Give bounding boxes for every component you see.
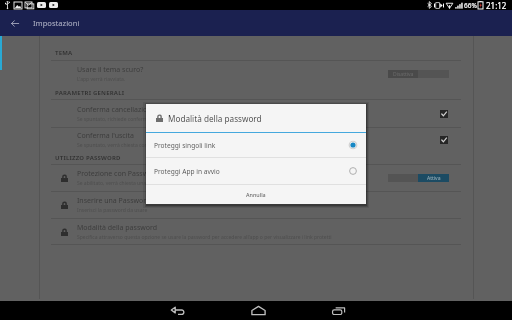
button[interactable]: Inserire una Password bbox=[40, 192, 461, 218]
staticText: Attiva bbox=[427, 175, 441, 182]
button[interactable]: Checkbox checked bbox=[440, 136, 448, 144]
staticText: Impostazioni bbox=[33, 18, 80, 28]
staticText: 66% bbox=[464, 1, 477, 10]
button[interactable]: Home bbox=[249, 301, 267, 320]
button[interactable]: Protezione con Password bbox=[40, 165, 461, 191]
staticText: Proteggi App in avvio bbox=[154, 167, 220, 176]
staticText: Usare il tema scuro? bbox=[77, 65, 144, 75]
staticText: Modalità della password bbox=[77, 223, 158, 233]
button[interactable]: Recent apps bbox=[330, 301, 348, 320]
button[interactable]: Checkbox checked bbox=[440, 110, 448, 118]
staticText: PARAMETRI GENERALI bbox=[55, 89, 125, 97]
staticText: 21:12 bbox=[486, 0, 507, 10]
staticText: Protezione con Password bbox=[77, 169, 160, 179]
staticText: Conferma cancellazione bbox=[77, 105, 156, 115]
button[interactable]: Conferma l'uscita bbox=[40, 128, 461, 151]
staticText: Inserisci la password da usare bbox=[77, 207, 148, 214]
button[interactable]: Modalità della password bbox=[40, 219, 461, 244]
button[interactable]: Disattiva bbox=[388, 70, 449, 78]
staticText: Conferma l'uscita bbox=[77, 131, 134, 141]
button[interactable]: Annulla bbox=[146, 185, 366, 204]
staticText: Annulla bbox=[246, 191, 266, 198]
staticText: Se abilitato, verrà chiesta una password… bbox=[77, 180, 190, 187]
button[interactable]: Attiva bbox=[388, 174, 449, 182]
staticText: Disattiva bbox=[393, 71, 414, 78]
button[interactable]: Proteggi App in avvio bbox=[146, 158, 366, 184]
staticText: UTILIZZO PASSWORD bbox=[55, 154, 121, 162]
button[interactable]: Back bbox=[5, 14, 24, 33]
staticText: Inserire una Password bbox=[77, 196, 151, 206]
button[interactable]: Usare il tema scuro? bbox=[40, 61, 461, 86]
staticText: Proteggi singoli link bbox=[154, 141, 216, 150]
staticText: Modalità della password bbox=[168, 113, 262, 124]
button[interactable]: Proteggi singoli link bbox=[146, 133, 366, 157]
staticText: TEMA bbox=[55, 49, 73, 57]
staticText: Specifica attraverso questa opzione se u… bbox=[77, 234, 332, 241]
button[interactable]: Conferma cancellazione bbox=[40, 100, 461, 127]
staticText: Se spuntato, richiede conferma prima di … bbox=[77, 116, 197, 123]
staticText: Se spuntato, verrà chiesta conferma prim… bbox=[77, 142, 198, 149]
button[interactable]: Back bbox=[169, 301, 187, 320]
staticText: L'app verrà riavviata. bbox=[77, 76, 126, 83]
